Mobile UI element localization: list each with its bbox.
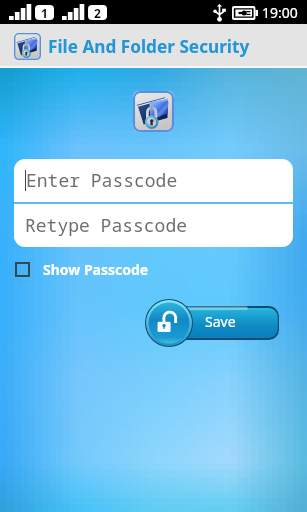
button[interactable]: Show Passcode [15, 260, 149, 279]
button[interactable]: Retype Passcode [14, 204, 293, 247]
staticText: 2 [94, 5, 101, 20]
button[interactable]: Enter Passcode [14, 159, 293, 202]
staticText: File And Folder Security [48, 35, 250, 58]
other: Save [145, 299, 193, 347]
button[interactable]: Save [145, 299, 281, 348]
staticText: Show Passcode [43, 260, 149, 279]
other: USB [212, 4, 227, 22]
staticText: Enter Passcode [26, 168, 178, 193]
other: Save [156, 310, 182, 336]
staticText: Save [205, 312, 236, 331]
staticText: Retype Passcode [25, 213, 187, 238]
staticText: 1 [41, 5, 48, 20]
staticText: 19:00 [262, 3, 298, 22]
other: Battery [232, 6, 258, 20]
